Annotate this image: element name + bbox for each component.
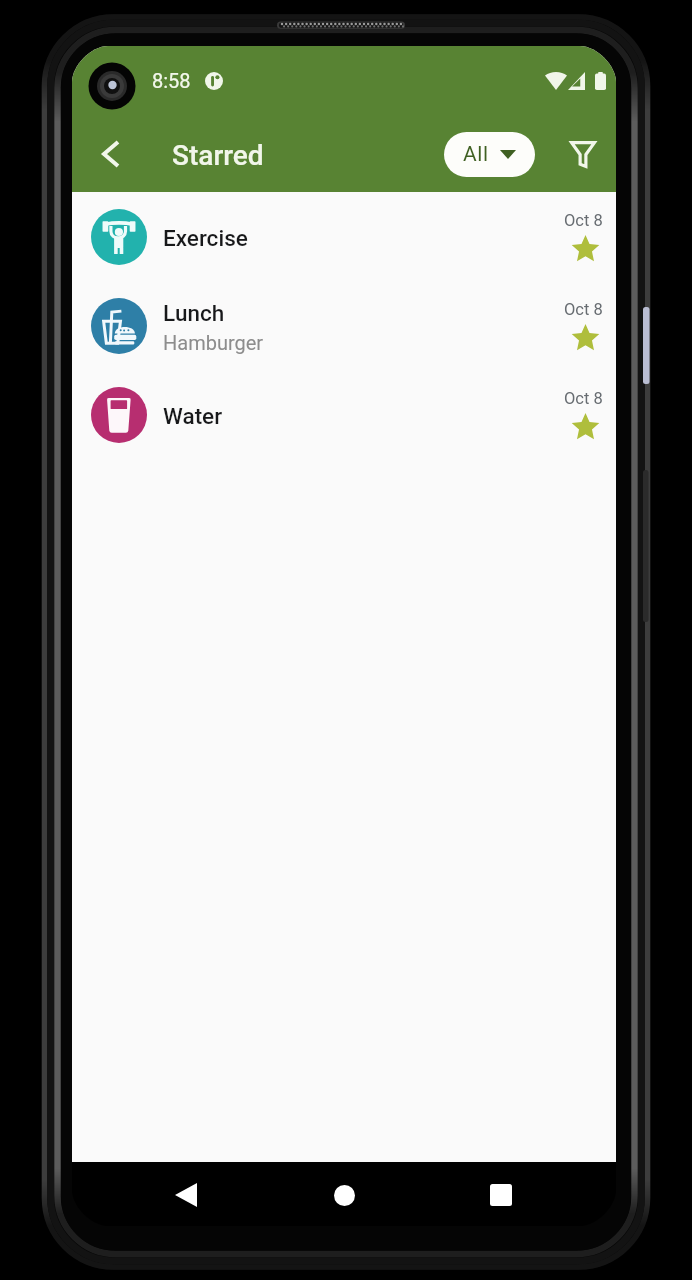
button[interactable]: Recent apps [477, 1171, 525, 1219]
button[interactable]: Lunch [72, 281, 616, 370]
staticText: Oct 8 [564, 211, 603, 230]
staticText: Water [163, 403, 223, 429]
staticText: Hamburger [163, 331, 264, 354]
button[interactable]: All [444, 132, 535, 177]
staticText: Exercise [163, 225, 248, 251]
button[interactable]: Back [162, 1171, 210, 1219]
button[interactable]: Navigate up [86, 129, 135, 178]
staticText: Oct 8 [564, 300, 603, 319]
staticText: 8:58 [152, 69, 191, 92]
staticText: All [463, 142, 489, 167]
button[interactable]: Water [72, 370, 616, 459]
button[interactable]: Filter [559, 130, 607, 178]
button[interactable]: Exercise [72, 192, 616, 281]
staticText: Starred [172, 139, 264, 172]
staticText: Oct 8 [564, 389, 603, 408]
staticText: Lunch [163, 300, 225, 326]
button[interactable]: Home [320, 1171, 368, 1219]
